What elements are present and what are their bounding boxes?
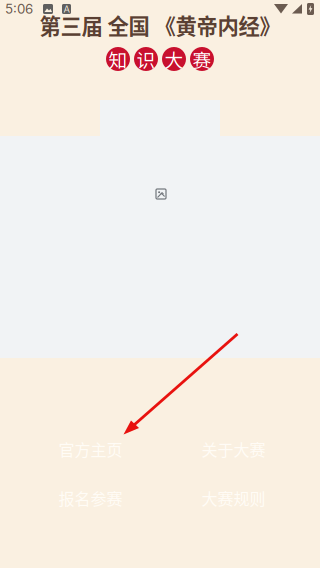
staticText: 报名参赛 [58, 486, 122, 510]
staticText: 大赛规则 [201, 486, 265, 510]
button[interactable]: 报名参赛 [19, 478, 162, 518]
staticText: 大 [164, 45, 183, 72]
staticText: 知 [108, 45, 127, 72]
button[interactable]: 关于大赛 [162, 429, 305, 469]
button[interactable]: 大赛规则 [162, 478, 305, 518]
staticText: 赛 [192, 45, 211, 72]
staticText: 关于大赛 [201, 437, 265, 461]
staticText: 官方主页 [58, 437, 122, 461]
button[interactable]: 官方主页 [19, 429, 162, 469]
staticText: 识 [136, 45, 155, 72]
staticText: 5:06 [5, 1, 33, 17]
staticText: A [63, 3, 69, 15]
staticText: 第三届 全国 《黄帝内经》 [39, 10, 280, 40]
